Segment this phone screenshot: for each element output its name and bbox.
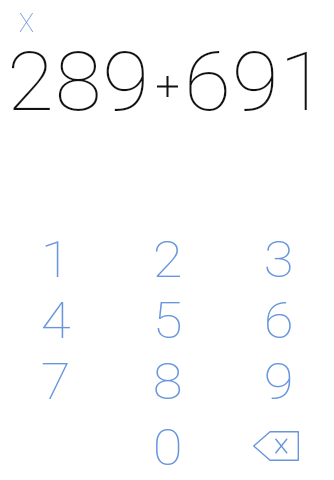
button[interactable]: Backspace [223, 413, 334, 480]
staticText: 1 [41, 231, 71, 290]
button[interactable]: Close [12, 9, 41, 38]
staticText: X [19, 9, 34, 38]
staticText: 2 [153, 231, 183, 290]
button[interactable]: 1 [0, 230, 112, 291]
button[interactable]: 5 [112, 291, 223, 352]
button[interactable]: 6 [223, 291, 334, 352]
staticText: 289 [7, 35, 150, 130]
button[interactable]: 0 [112, 413, 223, 480]
button[interactable]: 8 [112, 352, 223, 413]
staticText: 0 [153, 419, 183, 478]
staticText: 8 [153, 353, 183, 412]
staticText: 5 [153, 292, 183, 351]
staticText: 9 [264, 353, 294, 412]
button[interactable]: 4 [0, 291, 112, 352]
staticText: 6 [264, 292, 294, 351]
button[interactable]: 9 [223, 352, 334, 413]
button[interactable]: 3 [223, 230, 334, 291]
staticText: 3 [264, 231, 294, 290]
staticText: 691 [184, 35, 327, 130]
staticText: 7 [41, 353, 71, 412]
button[interactable]: 2 [112, 230, 223, 291]
staticText: 4 [41, 292, 71, 351]
button[interactable]: 7 [0, 352, 112, 413]
